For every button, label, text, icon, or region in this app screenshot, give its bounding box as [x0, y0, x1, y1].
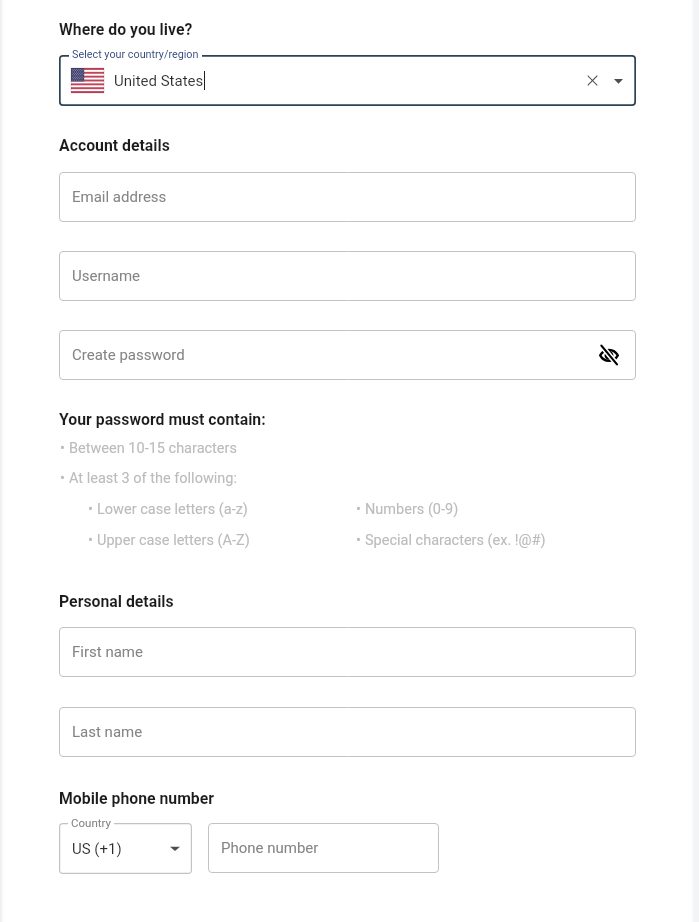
- staticText: •: [60, 470, 65, 487]
- staticText: United States: [114, 72, 204, 90]
- staticText: At least 3 of the following:: [69, 470, 237, 487]
- staticText: •: [88, 532, 93, 549]
- button[interactable]: Phone number: [208, 823, 439, 873]
- staticText: •: [60, 440, 65, 457]
- staticText: Mobile phone number: [59, 789, 215, 808]
- staticText: Special characters (ex. !@#): [365, 532, 546, 549]
- button[interactable]: Last name: [59, 707, 636, 757]
- staticText: Account details: [59, 136, 170, 155]
- staticText: Last name: [72, 723, 143, 741]
- button[interactable]: Username: [59, 251, 636, 301]
- button[interactable]: First name: [59, 627, 636, 677]
- staticText: •: [356, 532, 361, 549]
- staticText: First name: [72, 643, 143, 661]
- button[interactable]: Create password: [59, 330, 636, 380]
- staticText: Username: [72, 267, 141, 285]
- staticText: Select your country/region: [72, 48, 199, 61]
- staticText: •: [88, 501, 93, 518]
- staticText: Email address: [72, 188, 167, 206]
- staticText: US (+1): [72, 840, 122, 858]
- button[interactable]: Email address: [59, 172, 636, 222]
- staticText: Between 10-15 characters: [69, 440, 237, 457]
- button[interactable]: Select country code: [163, 836, 187, 860]
- staticText: Your password must contain:: [59, 410, 266, 429]
- button[interactable]: Clear selection: [578, 66, 606, 94]
- staticText: Phone number: [221, 839, 319, 857]
- staticText: Lower case letters (a-z): [97, 501, 248, 518]
- staticText: •: [356, 501, 361, 518]
- button[interactable]: Show password: [595, 341, 623, 369]
- staticText: Numbers (0-9): [365, 501, 459, 518]
- staticText: Personal details: [59, 592, 174, 611]
- staticText: Where do you live?: [59, 20, 193, 39]
- staticText: Country: [71, 816, 111, 829]
- staticText: Upper case letters (A-Z): [97, 532, 250, 549]
- staticText: Create password: [72, 346, 185, 364]
- button[interactable]: Open country list: [604, 67, 632, 95]
